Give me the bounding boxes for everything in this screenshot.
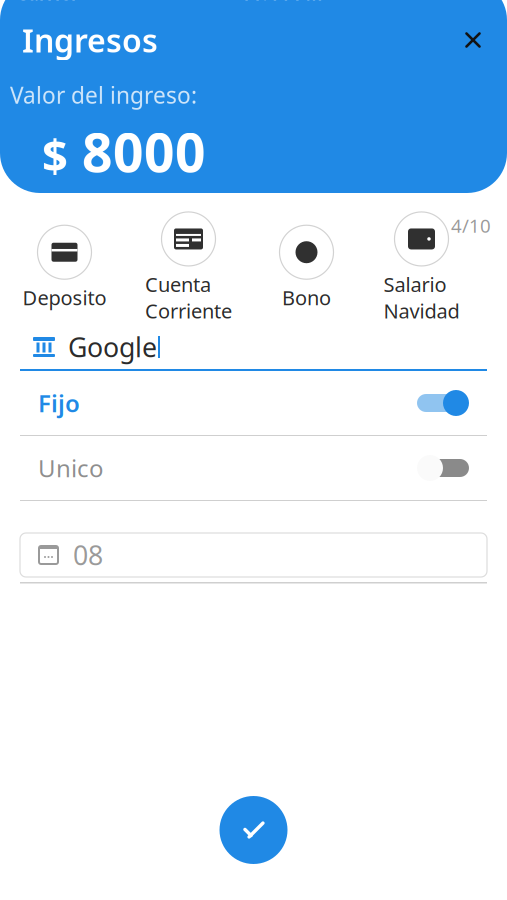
staticText: Ingresos <box>22 19 158 61</box>
button[interactable]: Bono <box>262 225 350 311</box>
staticText: Bono <box>282 284 331 311</box>
staticText: Google <box>68 329 157 365</box>
button[interactable]: Deposito <box>14 225 114 311</box>
button[interactable]: Salario Navidad <box>350 212 492 324</box>
staticText: 4/10 <box>451 213 491 238</box>
staticText: Salario Navidad <box>383 271 459 324</box>
staticText: 08 <box>73 537 103 573</box>
staticText: 8000 <box>82 116 206 187</box>
staticText: 11:44 PM <box>240 0 322 5</box>
button[interactable]: Fijo <box>0 371 507 436</box>
staticText: Cuenta Corriente <box>145 271 232 324</box>
staticText: Valor del ingreso: <box>10 80 197 110</box>
button[interactable]: Unico <box>0 436 507 501</box>
button[interactable]: Google <box>0 325 507 371</box>
staticText: Carrier <box>16 0 79 5</box>
staticText: Deposito <box>22 284 106 311</box>
staticText: Fijo <box>38 387 80 419</box>
staticText: Unico <box>38 452 104 484</box>
staticText: $ <box>42 124 68 185</box>
button[interactable]: Cerrar <box>451 18 495 62</box>
button[interactable]: 08 <box>0 533 507 577</box>
button[interactable]: Cuenta Corriente <box>114 212 262 324</box>
button[interactable]: Confirmar <box>219 796 287 864</box>
